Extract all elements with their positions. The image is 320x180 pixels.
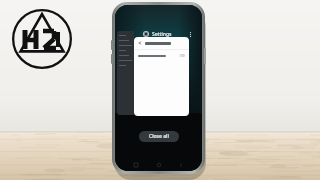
staticText: Settings: [152, 31, 172, 38]
button[interactable]: More options: [186, 30, 194, 38]
button[interactable]: Back: [179, 163, 183, 167]
button[interactable]: Recents: [134, 163, 138, 167]
button[interactable]: Settings recent app preview: [134, 37, 189, 116]
button[interactable]: Close all: [139, 131, 179, 142]
button[interactable]: Previous recent app: [117, 31, 134, 115]
button[interactable]: H2 channel logo: [11, 8, 73, 70]
button[interactable]: Home: [157, 163, 161, 167]
staticText: Close all: [149, 133, 169, 140]
